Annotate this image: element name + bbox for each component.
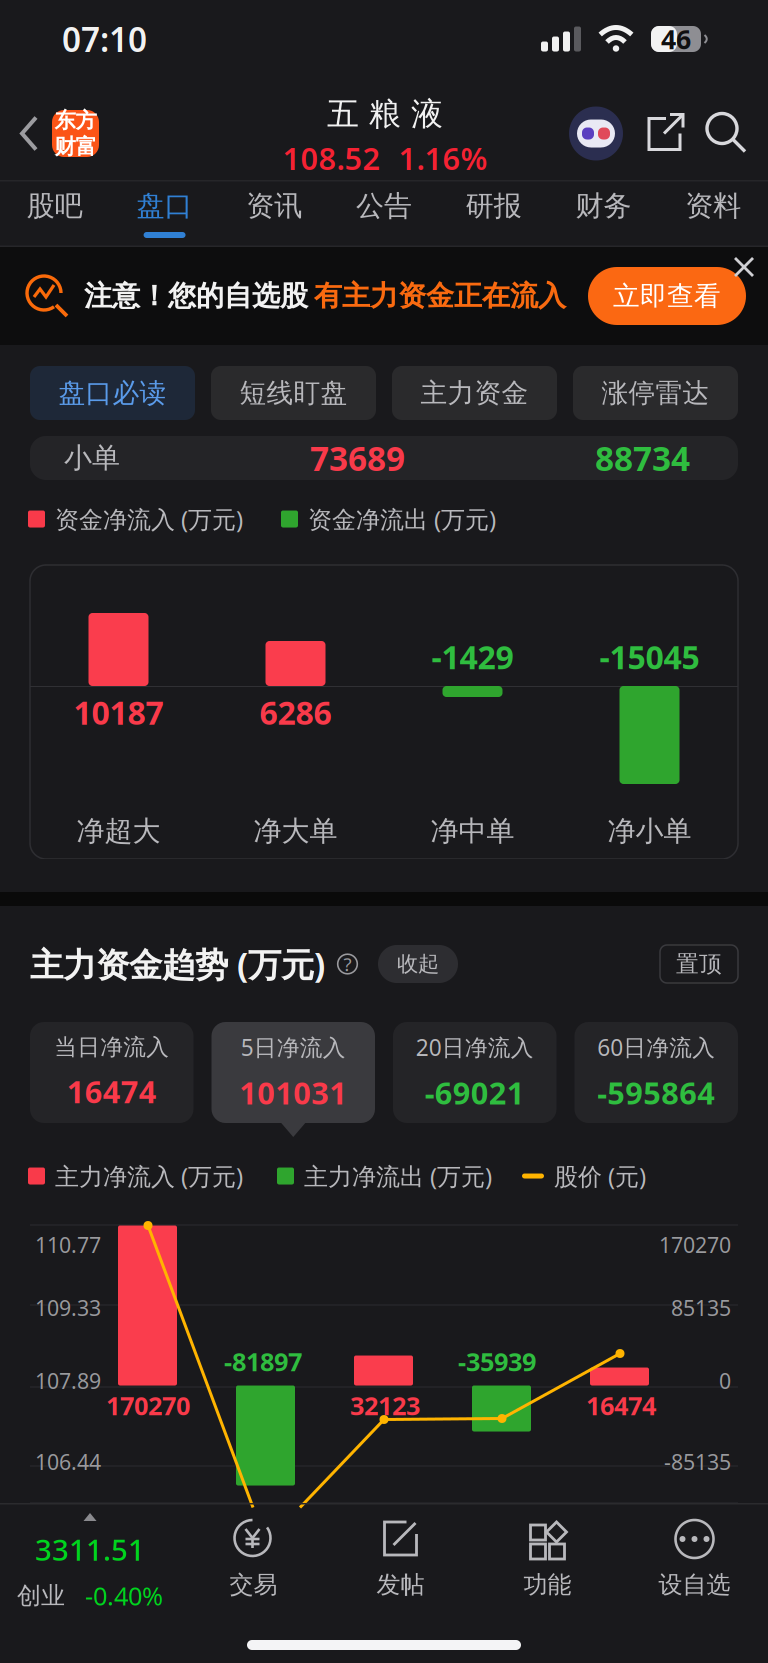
staticText: 有主力资金正在流入	[314, 279, 566, 313]
staticText: ?	[343, 952, 351, 976]
staticText: 功能	[523, 1570, 571, 1599]
staticText: 净大单	[253, 814, 337, 848]
button[interactable]: 盘口必读	[30, 366, 195, 420]
staticText: 16474	[67, 1071, 157, 1112]
staticText: 07:10	[62, 17, 147, 61]
staticText: -595864	[597, 1072, 715, 1113]
button[interactable]: 发帖	[327, 1503, 474, 1613]
button[interactable]: 交易	[180, 1503, 327, 1613]
staticText: 当日净流入	[54, 1033, 169, 1061]
button[interactable]: East Money home	[52, 110, 99, 157]
staticText: 主力资金	[420, 377, 528, 409]
staticText: 0	[719, 1366, 731, 1395]
staticText: 主力资金趋势 (万元)	[30, 942, 325, 986]
staticText: 立即查看	[613, 280, 721, 312]
staticText: 108.52	[282, 138, 380, 178]
button[interactable]: 财务	[549, 180, 658, 247]
staticText: 资料	[685, 189, 741, 223]
staticText: 46	[661, 21, 691, 57]
staticText: 研报	[466, 189, 522, 223]
button[interactable]: 短线盯盘	[211, 366, 376, 420]
staticText: 股价 (元)	[554, 1160, 646, 1192]
staticText: 公告	[356, 189, 412, 223]
staticText: 10187	[73, 691, 163, 733]
button[interactable]: AI assistant	[568, 104, 624, 162]
staticText: 5日净流入	[241, 1032, 346, 1062]
button[interactable]: 5日净流入	[211, 1022, 375, 1123]
staticText: 注意！您的自选股	[84, 279, 308, 313]
staticText: -35939	[458, 1344, 536, 1378]
button[interactable]: 公告	[329, 180, 439, 247]
button[interactable]: 置顶	[660, 945, 738, 983]
staticText: 盘口必读	[58, 377, 166, 409]
staticText: 110.77	[35, 1230, 101, 1259]
staticText: 股吧	[27, 189, 83, 223]
staticText: 60日净流入	[597, 1032, 715, 1062]
staticText: 置顶	[676, 950, 722, 978]
staticText: 6286	[259, 691, 331, 733]
button[interactable]: 资料	[658, 180, 768, 247]
staticText: 85135	[671, 1293, 731, 1322]
staticText: 资讯	[246, 189, 302, 223]
staticText: 净小单	[607, 814, 691, 848]
staticText: -1429	[431, 635, 513, 678]
staticText: 170270	[106, 1388, 190, 1422]
staticText: 16474	[586, 1388, 656, 1422]
staticText: 创业	[17, 1581, 65, 1610]
button[interactable]: Search	[702, 104, 750, 162]
button[interactable]: 主力资金	[392, 366, 557, 420]
button[interactable]: 盘口	[110, 180, 219, 247]
staticText: 20日净流入	[416, 1032, 534, 1062]
staticText: 盘口	[137, 189, 193, 223]
button[interactable]: ChiNext index 3311.51	[0, 1503, 180, 1613]
button[interactable]: 资讯	[219, 180, 329, 247]
staticText: 收起	[397, 951, 439, 977]
button[interactable]: 20日净流入	[393, 1022, 556, 1123]
button[interactable]: 收起	[378, 945, 458, 983]
staticText: -15045	[599, 635, 699, 678]
staticText: 短线盯盘	[239, 377, 347, 409]
button[interactable]: Close ad	[730, 247, 768, 281]
button[interactable]: 当日净流入	[30, 1022, 193, 1123]
staticText: 设自选	[658, 1570, 730, 1599]
staticText: 106.44	[35, 1447, 101, 1476]
button[interactable]: 研报	[439, 180, 549, 247]
staticText: 3311.51	[35, 1530, 145, 1569]
staticText: 101031	[239, 1072, 347, 1113]
staticText: 发帖	[376, 1570, 424, 1599]
staticText: 小单	[64, 441, 120, 475]
staticText: 交易	[229, 1570, 277, 1599]
staticText: 32123	[350, 1388, 420, 1422]
staticText: 主力净流出 (万元)	[304, 1160, 492, 1192]
staticText: 109.33	[35, 1293, 101, 1322]
staticText: -0.40%	[85, 1579, 163, 1613]
staticText: -85135	[664, 1447, 731, 1476]
button[interactable]: 立即查看	[588, 267, 746, 325]
staticText: 净中单	[430, 814, 514, 848]
staticText: 170270	[659, 1230, 731, 1259]
staticText: -69021	[425, 1072, 525, 1113]
staticText: 东方	[54, 107, 96, 133]
button[interactable]: Share	[642, 104, 690, 162]
staticText: 财富	[54, 133, 96, 160]
staticText: 净超大	[76, 814, 160, 848]
staticText: 73689	[310, 436, 405, 480]
staticText: 财务	[575, 189, 631, 223]
staticText: -81897	[224, 1344, 302, 1378]
button[interactable]: 涨停雷达	[573, 366, 738, 420]
staticText: 主力净流入 (万元)	[55, 1160, 243, 1192]
staticText: 107.89	[35, 1366, 101, 1395]
button[interactable]: 股吧	[0, 180, 110, 247]
button[interactable]: 60日净流入	[574, 1022, 738, 1123]
button[interactable]: 功能	[474, 1503, 621, 1613]
staticText: 资金净流入 (万元)	[55, 503, 243, 535]
button[interactable]: Back	[0, 87, 52, 180]
staticText: 88734	[595, 436, 690, 480]
button[interactable]: 设自选	[621, 1503, 768, 1613]
staticText: 1.16%	[398, 138, 487, 178]
staticText: 涨停雷达	[601, 377, 709, 409]
staticText: 五 粮 液	[327, 94, 443, 134]
staticText: 资金净流出 (万元)	[308, 503, 496, 535]
